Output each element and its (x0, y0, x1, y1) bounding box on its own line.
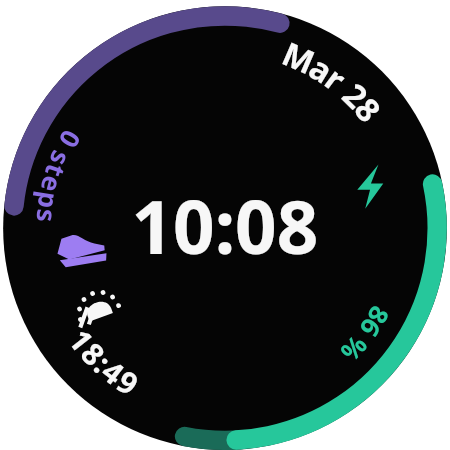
button[interactable]: Watch face, 10:08 (0, 0, 450, 450)
